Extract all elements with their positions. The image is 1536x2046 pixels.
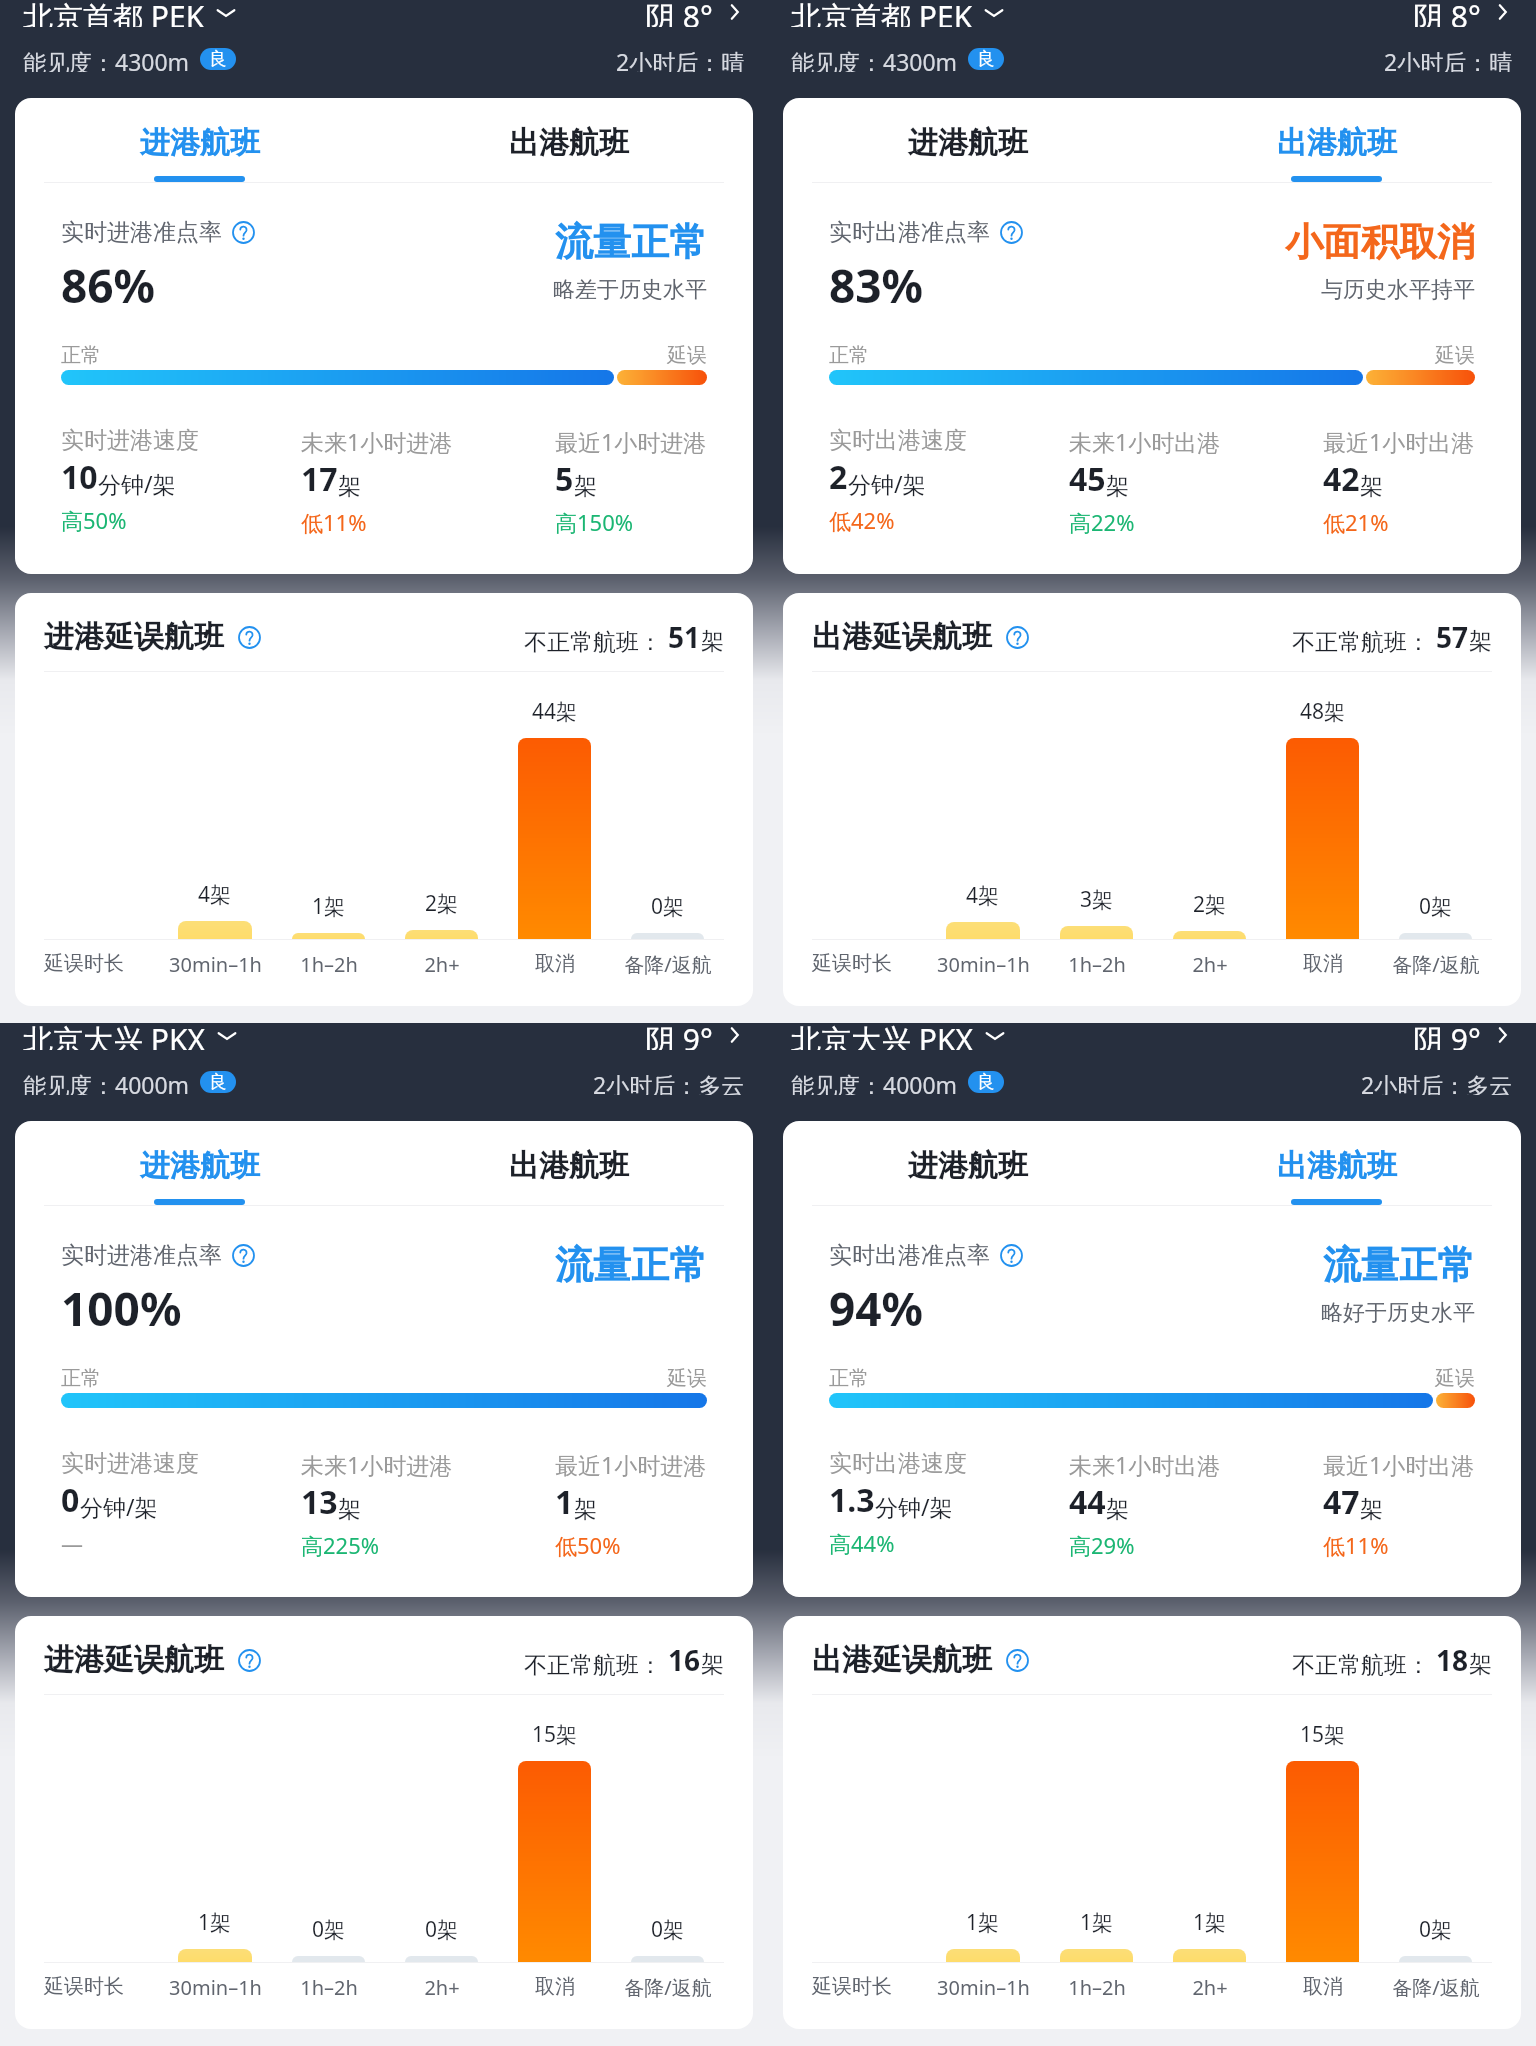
staticText: 100% [61,1277,182,1340]
staticText: 30min–1h [169,1974,262,2001]
staticText: 备降/返航 [624,1974,712,2001]
staticText: 高50% [61,505,127,535]
staticText: 延误 [1435,343,1475,368]
staticText: 架 [338,472,361,501]
other: 说明 [1000,1244,1023,1267]
staticText: 正常 [61,343,101,368]
staticText: 13 [301,1480,338,1524]
staticText: 高44% [829,1528,895,1558]
staticText: 延误 [667,1366,707,1391]
button[interactable]: 阴 9° [1413,1019,1513,1050]
button[interactable]: 出港航班 [1152,1121,1521,1205]
button[interactable]: 出港航班 [384,1121,753,1205]
staticText: 架 [574,1495,597,1524]
staticText: 不正常航班： [524,1648,668,1679]
staticText: 延误时长 [44,1974,124,1999]
staticText: 低11% [1323,1530,1389,1560]
staticText: 出港航班 [1277,1147,1397,1185]
staticText: 架 [1106,472,1129,501]
staticText: 2架 [425,889,459,918]
staticText: 18 [1436,1641,1469,1679]
staticText: 延误时长 [812,951,892,976]
staticText: 2h+ [1192,951,1228,978]
staticText: 流量正常 [555,218,707,266]
staticText: 1架 [966,1908,1000,1937]
button[interactable]: 进港航班 [15,98,384,182]
staticText: 1架 [198,1908,232,1937]
staticText: 15架 [532,1720,578,1749]
staticText: 架 [1469,627,1492,656]
staticText: 低42% [829,505,895,535]
staticText: 备降/返航 [624,951,712,978]
staticText: 44 [1069,1480,1106,1524]
staticText: 能见度：4300m [791,46,958,72]
staticText: 94% [829,1277,924,1340]
staticText: 良 [977,48,995,70]
button[interactable]: 北京首都 PEK [791,0,1005,27]
staticText: 实时进港准点率 [61,218,222,247]
staticText: 正常 [829,1366,869,1391]
button[interactable]: 北京大兴 PKX [23,1019,238,1050]
staticText: 取消 [1303,1974,1343,1999]
staticText: 延误时长 [812,1974,892,1999]
staticText: 延误 [1435,1366,1475,1391]
staticText: 良 [209,1071,227,1093]
staticText: 83% [829,254,924,317]
staticText: 17 [301,457,338,501]
other: 说明 [1006,626,1029,649]
staticText: 实时出港准点率 [829,1241,990,1270]
button[interactable]: 进港航班 [783,98,1152,182]
staticText: 架 [1360,1495,1383,1524]
staticText: 取消 [1303,951,1343,976]
button[interactable]: 出港航班 [1152,98,1521,182]
staticText: 实时出港速度 [829,1449,967,1478]
staticText: 未来1小时进港 [301,1449,453,1480]
button[interactable]: 阴 8° [1413,0,1513,27]
staticText: 略好于历史水平 [1321,1299,1475,1327]
other: 说明 [238,1649,261,1672]
staticText: 出港航班 [1277,124,1397,162]
staticText: 进港航班 [140,1147,260,1185]
staticText: 5 [555,457,574,501]
staticText: 出港延误航班 [812,618,992,656]
button[interactable]: 进港航班 [783,1121,1152,1205]
staticText: 48架 [1300,697,1346,726]
staticText: 阴 8° [1413,0,1481,27]
staticText: 分钟/架 [98,468,176,499]
staticText: 架 [1469,1650,1492,1679]
staticText: 86% [61,254,156,317]
staticText: 1h–2h [300,951,358,978]
staticText: 高150% [555,507,634,537]
staticText: 阴 9° [645,1019,713,1050]
staticText: 正常 [829,343,869,368]
other: 说明 [232,221,255,244]
staticText: 出港延误航班 [812,1641,992,1679]
staticText: 0架 [1419,892,1453,921]
staticText: 最近1小时进港 [555,426,707,457]
staticText: 实时出港准点率 [829,218,990,247]
staticText: 30min–1h [937,1974,1030,2001]
button[interactable]: 进港航班 [15,1121,384,1205]
staticText: 北京首都 PEK [791,0,973,27]
staticText: 低11% [301,507,367,537]
staticText: 出港航班 [509,124,629,162]
staticText: 架 [338,1495,361,1524]
staticText: 2h+ [424,951,460,978]
staticText: 取消 [535,951,575,976]
staticText: 高29% [1069,1530,1135,1560]
staticText: 北京首都 PEK [23,0,205,27]
staticText: 最近1小时出港 [1323,426,1475,457]
button[interactable]: 北京大兴 PKX [791,1019,1006,1050]
staticText: 47 [1323,1480,1360,1524]
button[interactable]: 出港航班 [384,98,753,182]
button[interactable]: 北京首都 PEK [23,0,237,27]
button[interactable]: 阴 8° [645,0,745,27]
staticText: 分钟/架 [875,1491,953,1522]
staticText: 实时进港准点率 [61,1241,222,1270]
button[interactable]: 阴 9° [645,1019,745,1050]
staticText: 备降/返航 [1392,1974,1480,2001]
other: 说明 [232,1244,255,1267]
staticText: 架 [1360,472,1383,501]
staticText: 未来1小时出港 [1069,426,1221,457]
staticText: 低50% [555,1530,621,1560]
